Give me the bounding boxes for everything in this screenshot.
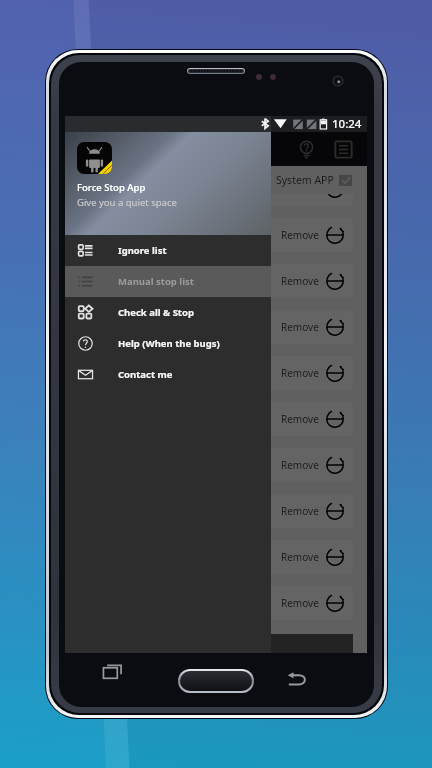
button[interactable]: Remove — [69, 448, 353, 482]
staticText: Remove — [281, 182, 319, 196]
staticText: Remove — [281, 320, 319, 334]
button[interactable]: Contact me — [65, 359, 271, 390]
staticText: Remove — [281, 504, 319, 518]
button[interactable]: Remove — [69, 356, 353, 390]
staticText: Help (When the bugs) — [118, 337, 220, 350]
button[interactable]: Remove — [69, 402, 353, 436]
button[interactable]: Ignore list — [65, 235, 271, 266]
button[interactable]: Show system apps — [339, 175, 352, 186]
staticText: Check all & Stop — [118, 306, 194, 319]
button[interactable]: Remove — [69, 540, 353, 574]
staticText: Manual stop list — [118, 275, 194, 288]
staticText: Force Stop App — [77, 181, 146, 194]
staticText: Remove — [281, 550, 319, 564]
staticText: Ignore list — [118, 244, 167, 257]
button[interactable]: Recent apps — [96, 654, 130, 688]
staticText: Remove — [281, 412, 319, 426]
staticText: Remove — [281, 228, 319, 242]
button[interactable]: Menu — [326, 132, 360, 166]
staticText: Remove — [281, 458, 319, 472]
button[interactable]: Home — [180, 671, 252, 691]
button[interactable]: Remove — [69, 218, 353, 252]
button[interactable]: Remove — [69, 310, 353, 344]
button[interactable] — [65, 634, 353, 653]
button[interactable]: Remove — [69, 172, 353, 206]
staticText: Remove — [281, 596, 319, 610]
staticText: 10:24 — [332, 116, 362, 132]
button[interactable]: Remove — [69, 264, 353, 298]
button[interactable]: Check all & Stop — [65, 297, 271, 328]
button[interactable]: Help — [289, 132, 323, 166]
button[interactable]: Help (When the bugs) — [65, 328, 271, 359]
staticText: Give you a quiet space — [77, 196, 177, 209]
staticText: Remove — [281, 366, 319, 380]
staticText: System APP — [276, 173, 334, 187]
button[interactable]: Back — [280, 662, 314, 696]
staticText: Remove — [281, 274, 319, 288]
staticText: Contact me — [118, 368, 173, 381]
button[interactable]: Manual stop list — [65, 266, 271, 297]
button[interactable]: Remove — [69, 494, 353, 528]
button[interactable]: Remove — [69, 586, 353, 620]
